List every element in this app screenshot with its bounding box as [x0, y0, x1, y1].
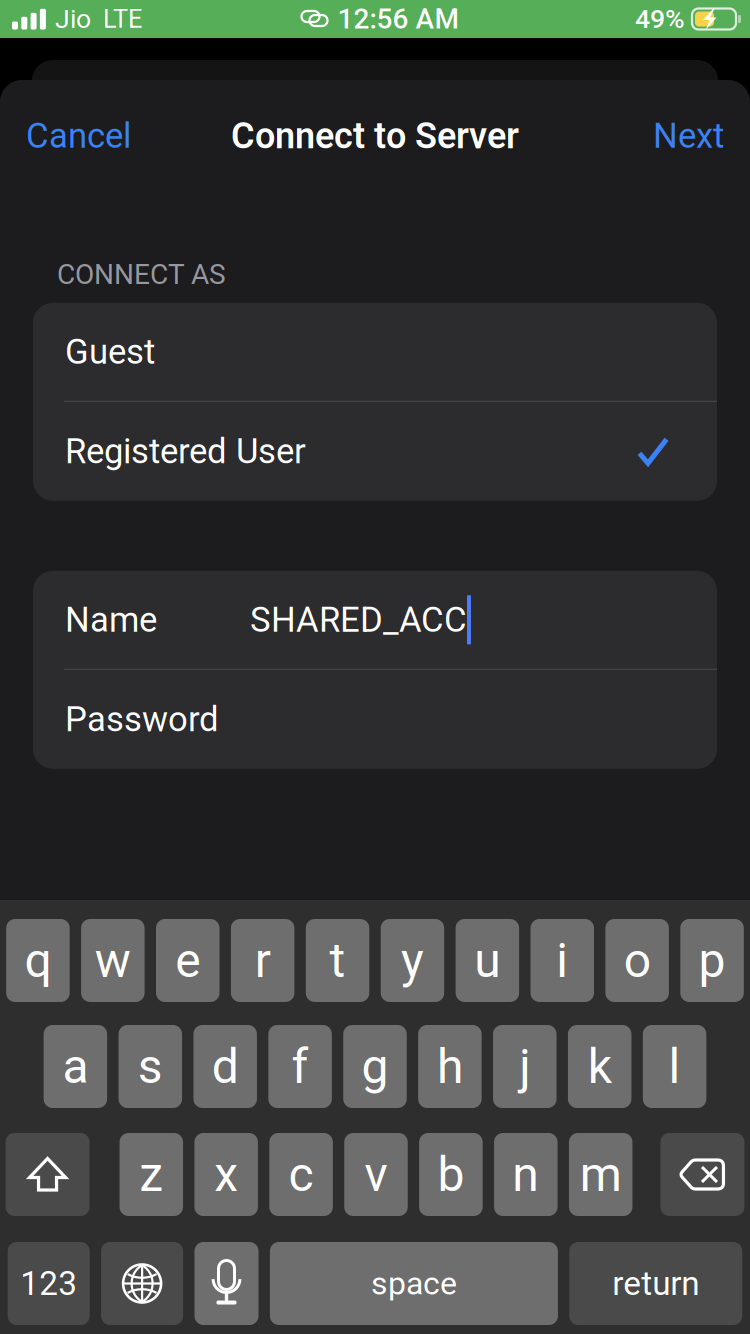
button[interactable]: return — [569, 1242, 742, 1325]
button[interactable]: Guest — [33, 303, 717, 401]
staticText: LTE — [103, 4, 142, 34]
staticText: d — [212, 1038, 239, 1095]
staticText: CONNECT AS — [57, 258, 226, 291]
staticText: return — [612, 1264, 699, 1303]
button[interactable]: a — [44, 1025, 107, 1108]
staticText: b — [437, 1146, 464, 1203]
staticText: c — [289, 1146, 314, 1203]
button[interactable]: k — [568, 1025, 631, 1108]
button[interactable]: 123 — [8, 1242, 90, 1325]
button[interactable]: r — [231, 919, 294, 1002]
button[interactable]: space — [270, 1242, 558, 1325]
button[interactable]: Next keyboard — [101, 1242, 183, 1325]
button[interactable]: v — [344, 1133, 408, 1216]
button[interactable]: m — [569, 1133, 632, 1216]
staticText: e — [175, 932, 200, 989]
staticText: m — [580, 1146, 622, 1203]
button[interactable]: e — [156, 919, 219, 1002]
staticText: p — [698, 932, 725, 989]
button[interactable]: s — [118, 1025, 182, 1108]
button[interactable]: y — [381, 919, 444, 1002]
staticText: i — [556, 932, 568, 989]
staticText: Name — [65, 599, 157, 640]
button[interactable]: Delete — [660, 1133, 744, 1216]
button[interactable]: Registered User — [33, 402, 717, 501]
staticText: s — [138, 1038, 163, 1095]
button[interactable]: g — [343, 1025, 407, 1108]
staticText: q — [24, 932, 51, 989]
button[interactable]: f — [268, 1025, 332, 1108]
staticText: z — [139, 1146, 163, 1203]
button[interactable]: h — [418, 1025, 482, 1108]
staticText: v — [364, 1146, 387, 1203]
button[interactable]: l — [643, 1025, 706, 1108]
staticText: 12:56 AM — [337, 3, 458, 35]
button[interactable]: i — [530, 919, 594, 1002]
staticText: Jio — [55, 3, 91, 35]
staticText: y — [401, 932, 424, 989]
button[interactable]: Cancel — [20, 104, 137, 168]
button[interactable]: o — [605, 919, 669, 1002]
staticText: j — [519, 1038, 530, 1095]
staticText: 49% — [635, 3, 685, 35]
button[interactable]: d — [193, 1025, 257, 1108]
staticText: space — [371, 1265, 457, 1302]
staticText: SHARED_ACC — [250, 599, 467, 640]
staticText: t — [330, 932, 346, 989]
button[interactable]: q — [6, 919, 70, 1002]
staticText: r — [255, 932, 271, 989]
staticText: Connect to Server — [231, 115, 519, 157]
staticText: Guest — [65, 331, 155, 372]
staticText: 123 — [20, 1264, 77, 1303]
button[interactable]: u — [456, 919, 519, 1002]
button[interactable]: x — [194, 1133, 258, 1216]
button[interactable]: n — [494, 1133, 558, 1216]
button[interactable]: Dictation — [194, 1242, 258, 1325]
staticText: l — [669, 1038, 681, 1095]
staticText: u — [474, 932, 500, 989]
button[interactable]: p — [680, 919, 744, 1002]
button[interactable]: Next — [647, 104, 730, 168]
staticText: n — [512, 1146, 539, 1203]
button[interactable]: z — [120, 1133, 183, 1216]
staticText: a — [62, 1038, 88, 1095]
button[interactable]: j — [493, 1025, 556, 1108]
button[interactable]: Shift — [6, 1133, 90, 1216]
staticText: w — [95, 932, 131, 989]
staticText: h — [437, 1038, 463, 1095]
staticText: k — [588, 1038, 612, 1095]
button[interactable]: c — [269, 1133, 333, 1216]
button[interactable]: w — [81, 919, 145, 1002]
staticText: Next — [653, 116, 724, 156]
staticText: g — [361, 1038, 388, 1095]
button[interactable]: b — [419, 1133, 483, 1216]
staticText: Password — [65, 699, 219, 740]
staticText: Cancel — [26, 116, 131, 156]
staticText: f — [292, 1038, 309, 1095]
staticText: x — [214, 1146, 238, 1203]
staticText: o — [624, 932, 651, 989]
staticText: Registered User — [65, 431, 306, 472]
button[interactable]: t — [306, 919, 369, 1002]
